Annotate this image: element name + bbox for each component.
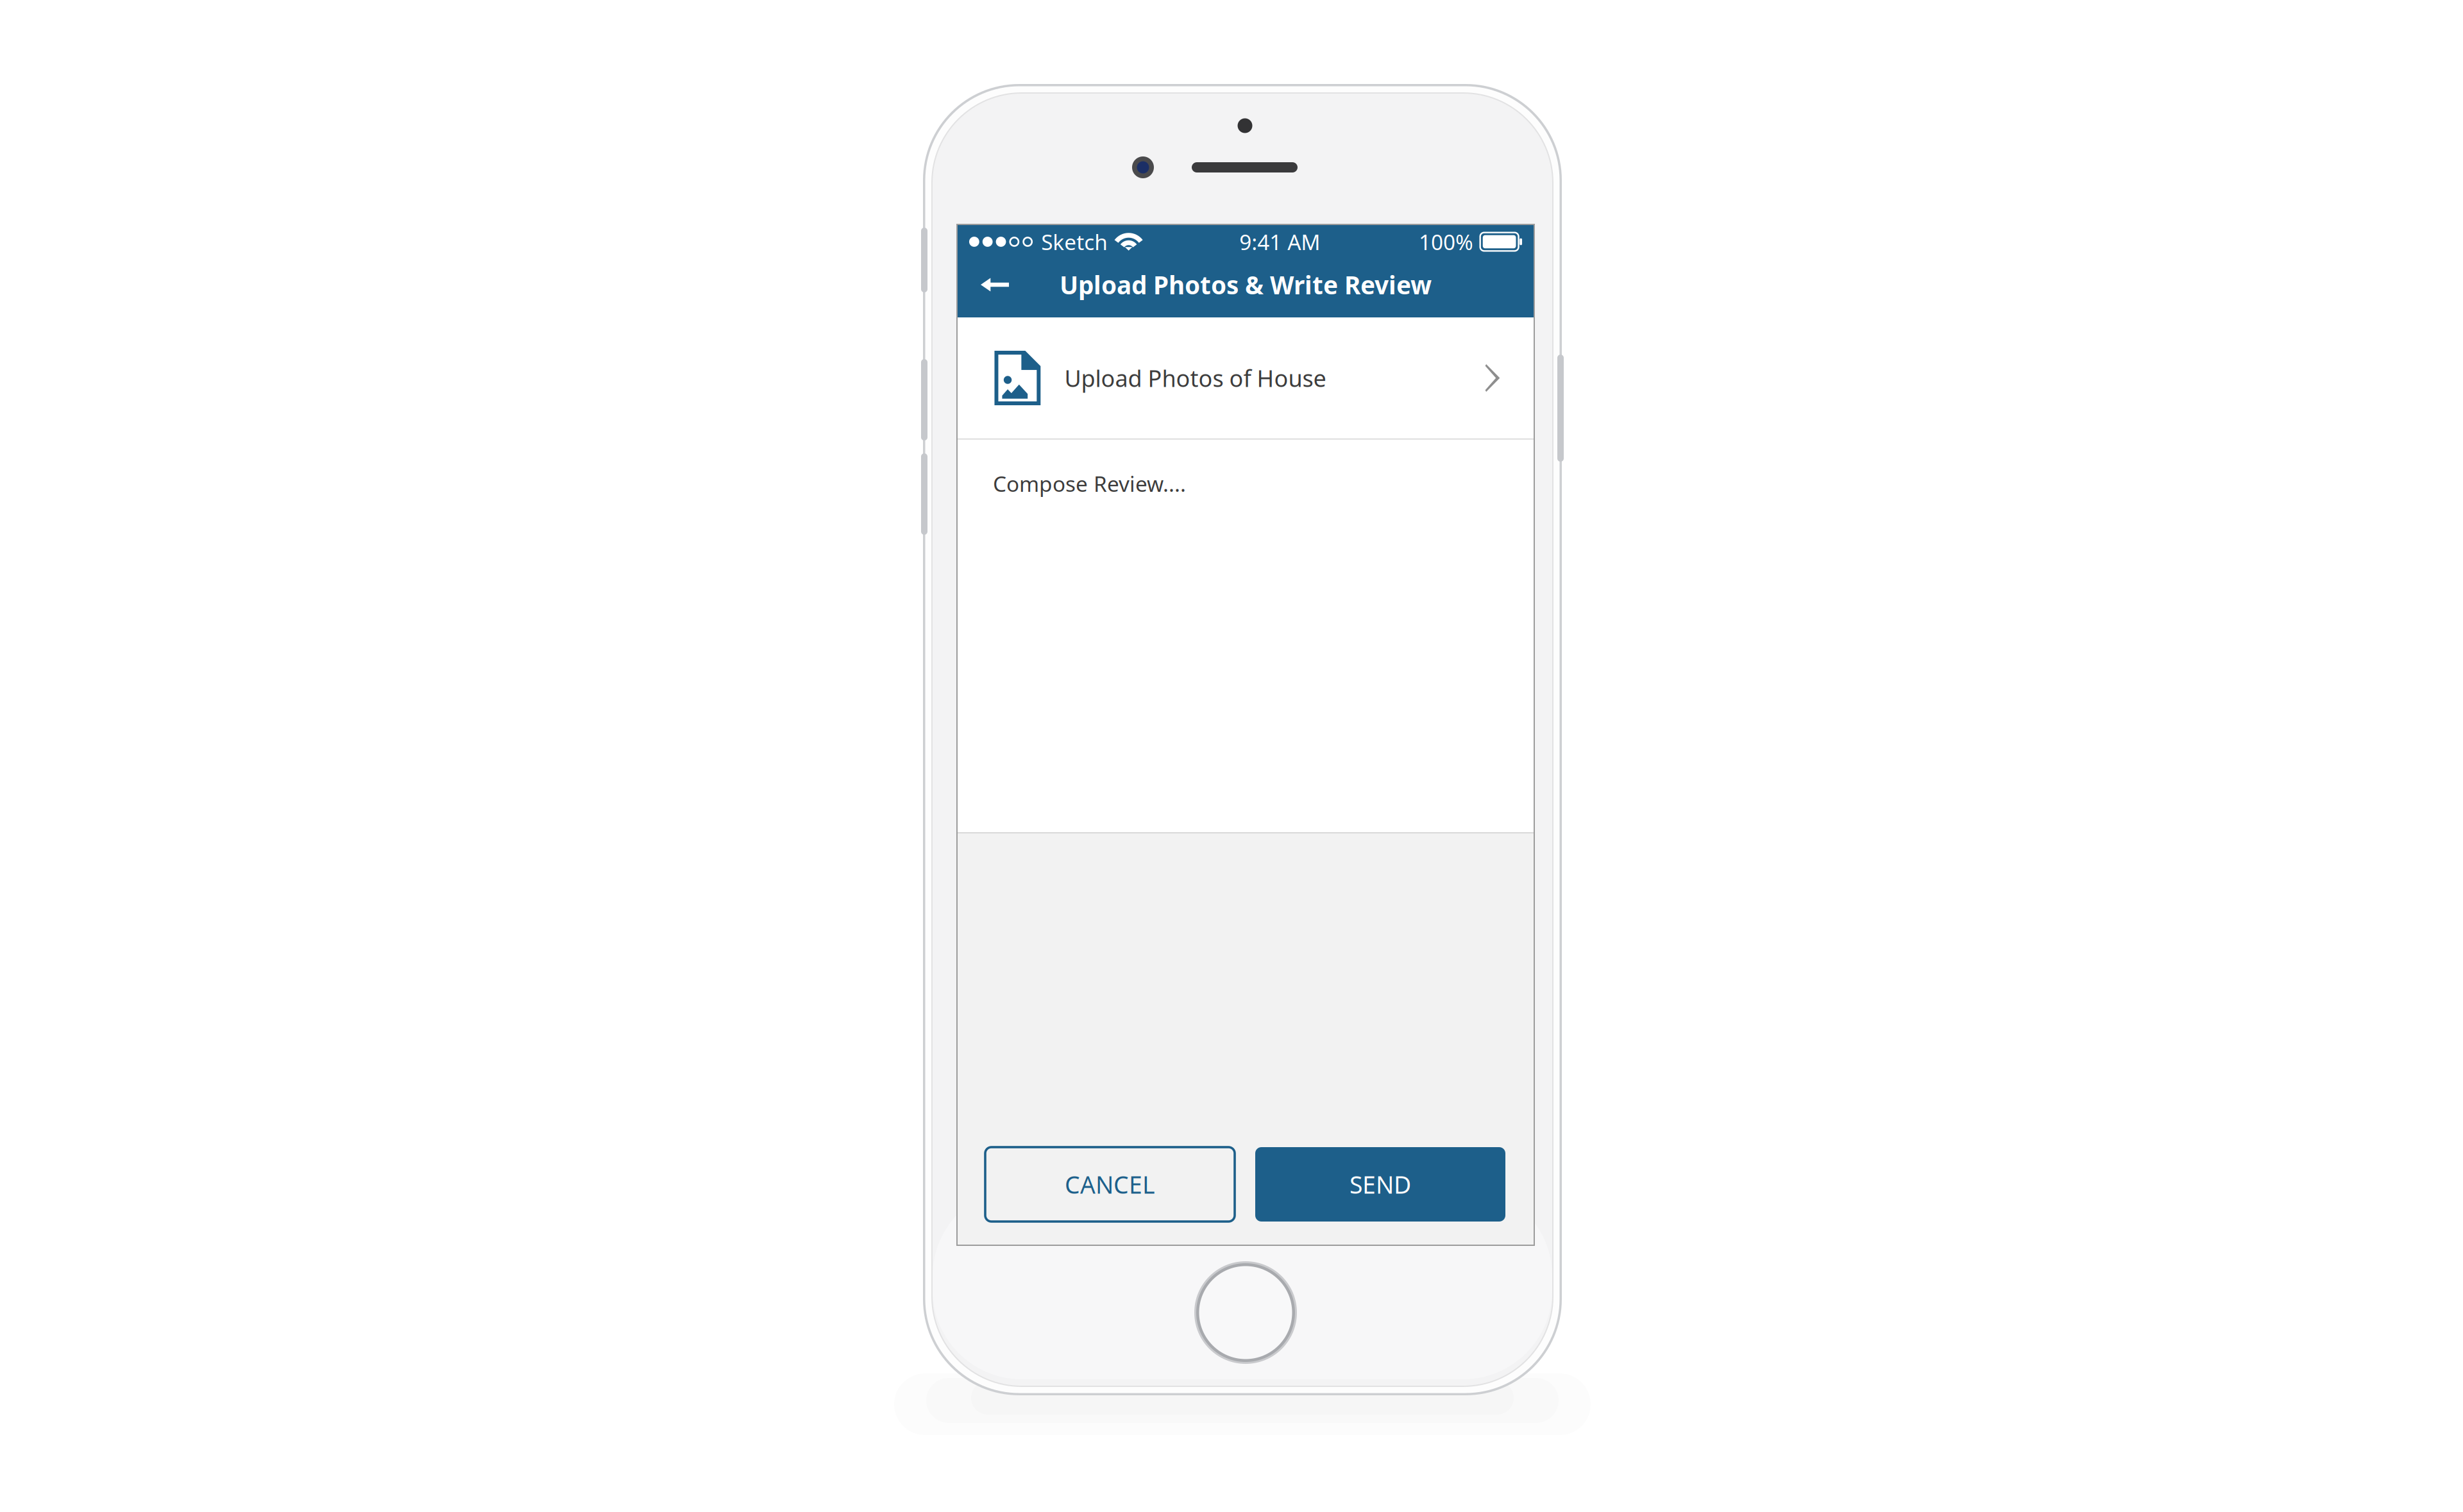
- staticText: Compose Review....: [993, 469, 1186, 498]
- staticText: Sketch: [1041, 228, 1108, 256]
- staticText: Upload Photos & Write Review: [1060, 268, 1432, 301]
- staticText: 9:41 AM: [1239, 228, 1320, 256]
- button[interactable]: CANCEL: [985, 1147, 1235, 1222]
- staticText: 100%: [1419, 228, 1473, 256]
- staticText: Upload Photos of House: [1064, 363, 1326, 393]
- button[interactable]: Upload Photos of House: [958, 317, 1534, 439]
- button[interactable]: Back: [964, 254, 1026, 315]
- staticText: SEND: [1350, 1168, 1411, 1200]
- staticText: CANCEL: [1065, 1168, 1155, 1200]
- button[interactable]: SEND: [1255, 1147, 1505, 1222]
